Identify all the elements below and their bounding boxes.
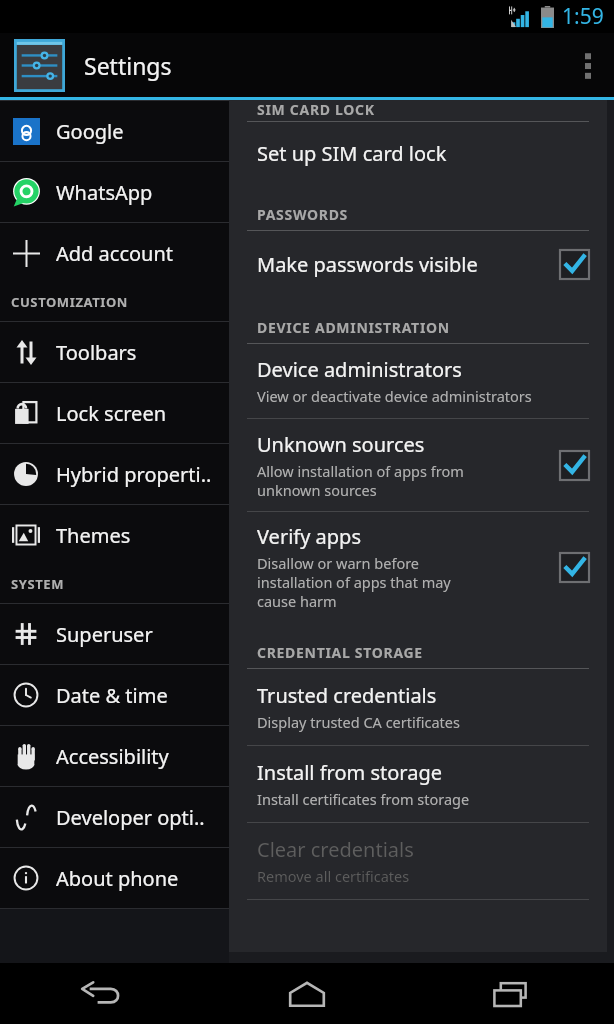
button[interactable]: Superuser bbox=[0, 604, 229, 664]
staticText: Toolbars bbox=[56, 339, 137, 366]
staticText: Set up SIM card lock bbox=[257, 140, 447, 167]
staticText: WhatsApp bbox=[56, 179, 153, 206]
button[interactable]: Toggle checkbox bbox=[560, 250, 589, 279]
button[interactable]: Accessibility bbox=[0, 726, 229, 786]
button[interactable]: Settings app icon bbox=[14, 39, 65, 92]
button[interactable]: Install from storage bbox=[229, 746, 607, 822]
button[interactable]: Home bbox=[204, 963, 409, 1024]
staticText: Add account bbox=[56, 240, 174, 267]
button[interactable]: Hybrid properti.. bbox=[0, 444, 229, 504]
button[interactable]: Toggle checkbox bbox=[560, 451, 589, 480]
staticText: SIM CARD LOCK bbox=[257, 100, 375, 115]
staticText: Hybrid properti.. bbox=[56, 461, 212, 488]
button[interactable]: Clear credentials bbox=[229, 823, 607, 899]
button[interactable]: Back bbox=[0, 963, 204, 1024]
button[interactable]: Toggle checkbox bbox=[560, 553, 589, 582]
staticText: Settings bbox=[84, 50, 172, 81]
staticText: Verify apps bbox=[257, 523, 361, 550]
staticText: Disallow or warn before installation of … bbox=[257, 553, 451, 611]
staticText: Device administrators bbox=[257, 356, 462, 383]
button[interactable]: More options bbox=[562, 33, 614, 97]
button[interactable]: Developer opti.. bbox=[0, 787, 229, 847]
staticText: Install certificates from storage bbox=[257, 789, 470, 809]
staticText: Make passwords visible bbox=[257, 251, 478, 278]
button[interactable]: Device administrators bbox=[229, 344, 607, 418]
staticText: Themes bbox=[56, 522, 131, 549]
staticText: Developer opti.. bbox=[56, 804, 205, 831]
button[interactable]: Recent apps bbox=[409, 963, 614, 1024]
button[interactable]: WhatsApp bbox=[0, 162, 229, 222]
staticText: Allow installation of apps from unknown … bbox=[257, 461, 464, 500]
staticText: 1:59 bbox=[562, 2, 604, 31]
staticText: Lock screen bbox=[56, 400, 167, 427]
button[interactable]: About phone bbox=[0, 848, 229, 908]
button[interactable]: Lock screen bbox=[0, 383, 229, 443]
staticText: Display trusted CA certificates bbox=[257, 712, 460, 732]
button[interactable]: Trusted credentials bbox=[229, 669, 607, 745]
staticText: Trusted credentials bbox=[257, 682, 437, 709]
staticText: About phone bbox=[56, 865, 179, 892]
staticText: Unknown sources bbox=[257, 431, 425, 458]
staticText: DEVICE ADMINISTRATION bbox=[257, 318, 450, 337]
staticText: Google bbox=[56, 118, 124, 145]
button[interactable]: Add account bbox=[0, 223, 229, 283]
staticText: Clear credentials bbox=[257, 836, 414, 863]
button[interactable]: Unknown sources bbox=[229, 419, 607, 511]
staticText: PASSWORDS bbox=[257, 205, 349, 224]
staticText: Superuser bbox=[56, 621, 153, 648]
button[interactable]: Set up SIM card lock bbox=[229, 122, 607, 184]
staticText: Accessibility bbox=[56, 743, 169, 770]
staticText: View or deactivate device administrators bbox=[257, 386, 532, 406]
staticText: Date & time bbox=[56, 682, 168, 709]
staticText: Install from storage bbox=[257, 759, 442, 786]
staticText: Remove all certificates bbox=[257, 866, 410, 886]
button[interactable]: Themes bbox=[0, 505, 229, 565]
button[interactable]: Toolbars bbox=[0, 322, 229, 382]
button[interactable]: Date & time bbox=[0, 665, 229, 725]
button[interactable]: Make passwords visible bbox=[229, 231, 607, 297]
staticText: CREDENTIAL STORAGE bbox=[257, 643, 423, 662]
button[interactable]: Google bbox=[0, 101, 229, 161]
staticText: CUSTOMIZATION bbox=[11, 293, 129, 311]
staticText: SYSTEM bbox=[11, 575, 65, 593]
button[interactable]: Verify apps bbox=[229, 512, 607, 622]
